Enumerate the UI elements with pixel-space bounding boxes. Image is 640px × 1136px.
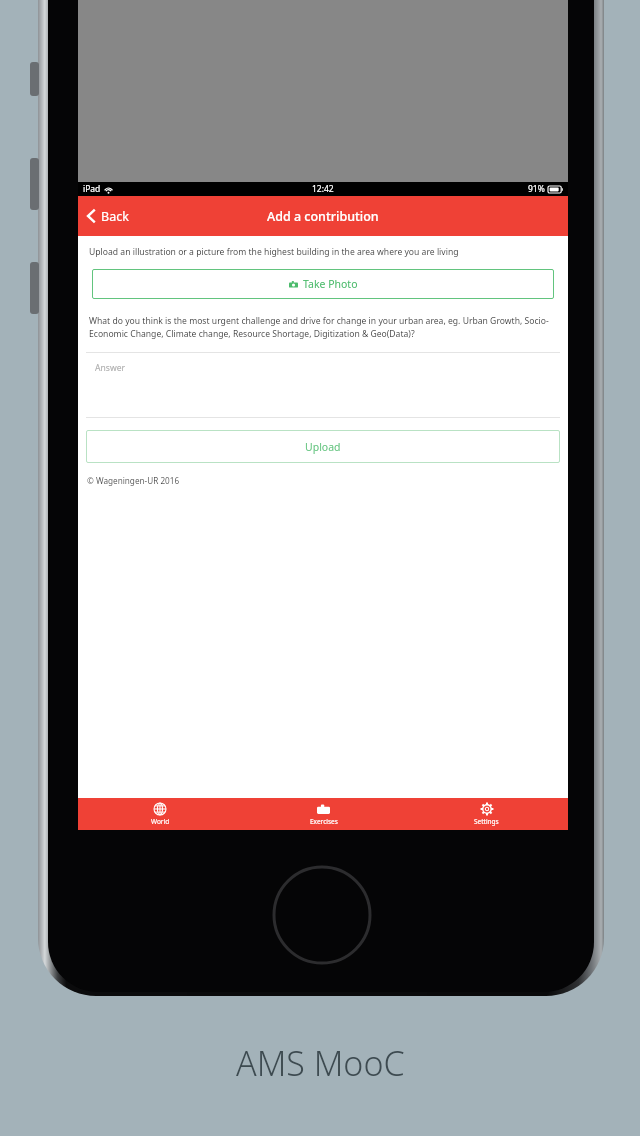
- button[interactable]: World: [78, 798, 242, 830]
- staticText: Upload: [305, 440, 341, 454]
- button[interactable]: Upload: [86, 430, 560, 463]
- staticText: Add a contribution: [267, 208, 379, 225]
- button[interactable]: Back: [78, 196, 139, 236]
- button[interactable]: Settings: [405, 798, 568, 830]
- staticText: World: [151, 817, 170, 826]
- staticText: iPad: [83, 183, 101, 195]
- staticText: 12:42: [312, 183, 334, 195]
- button[interactable]: Exercises: [242, 798, 405, 830]
- staticText: 91%: [528, 183, 545, 195]
- button[interactable]: Answer: [86, 353, 560, 417]
- staticText: Exercises: [310, 817, 338, 826]
- staticText: AMS MooC: [236, 1040, 405, 1086]
- button[interactable]: Take Photo: [92, 269, 554, 299]
- staticText: What do you think is the most urgent cha…: [89, 315, 557, 340]
- staticText: © Wageningen-UR 2016: [87, 475, 180, 486]
- staticText: Upload an illustration or a picture from…: [89, 246, 459, 258]
- staticText: Settings: [474, 817, 499, 826]
- staticText: Back: [101, 208, 129, 225]
- staticText: Answer: [95, 362, 126, 374]
- staticText: Take Photo: [303, 277, 358, 291]
